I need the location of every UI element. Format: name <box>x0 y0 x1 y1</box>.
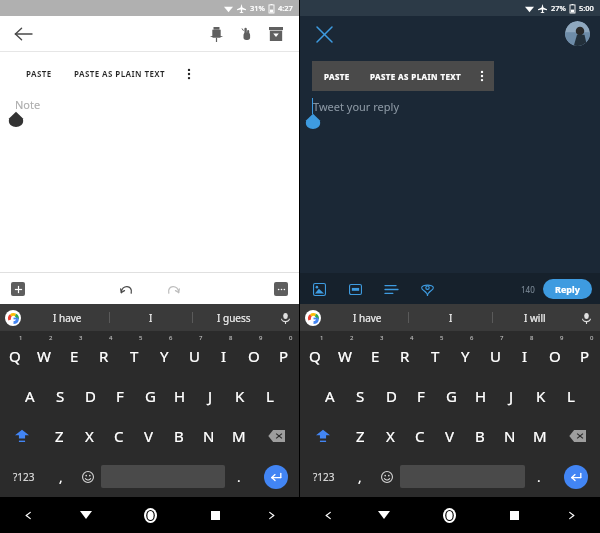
button[interactable]: , <box>347 456 373 497</box>
button[interactable]: N <box>495 416 525 456</box>
button[interactable]: Voice input <box>275 308 295 328</box>
button[interactable]: Backspace <box>555 416 600 456</box>
button[interactable]: Next <box>543 497 600 533</box>
button[interactable]: W <box>330 331 360 376</box>
button[interactable]: I guess <box>193 304 275 331</box>
button[interactable]: ?123 <box>0 456 47 497</box>
button[interactable]: B <box>164 416 194 456</box>
button[interactable]: E <box>360 331 390 376</box>
button[interactable]: Enter <box>552 456 600 497</box>
button[interactable]: I <box>409 304 492 331</box>
button[interactable]: ?123 <box>300 456 347 497</box>
button[interactable]: C <box>405 416 435 456</box>
button[interactable]: Recents <box>187 497 243 533</box>
button[interactable]: L <box>556 376 586 416</box>
button[interactable]: A <box>14 376 45 416</box>
button[interactable]: Close <box>312 22 336 46</box>
button[interactable]: Add GIF <box>344 278 366 300</box>
button[interactable]: Q <box>0 331 29 376</box>
button[interactable]: Reply <box>543 279 592 299</box>
button[interactable]: Add location <box>416 278 438 300</box>
button[interactable]: U <box>480 331 510 376</box>
button[interactable]: Undo <box>115 277 139 301</box>
button[interactable]: M <box>525 416 555 456</box>
button[interactable]: P <box>570 331 600 376</box>
button[interactable]: E <box>59 331 89 376</box>
button[interactable]: D <box>75 376 105 416</box>
button[interactable]: R <box>89 331 119 376</box>
button[interactable]: , <box>47 456 74 497</box>
button[interactable]: Add poll <box>380 278 402 300</box>
button[interactable]: V <box>435 416 465 456</box>
button[interactable]: U <box>179 331 209 376</box>
button[interactable]: PASTE AS PLAIN TEXT <box>362 61 470 91</box>
button[interactable]: Redo <box>161 277 185 301</box>
button[interactable]: H <box>466 376 496 416</box>
button[interactable]: J <box>195 376 225 416</box>
button[interactable]: S <box>45 376 75 416</box>
button[interactable]: Y <box>149 331 179 376</box>
button[interactable]: Archive <box>261 19 291 49</box>
button[interactable]: O <box>239 331 269 376</box>
button[interactable]: Shift <box>0 416 44 456</box>
button[interactable]: D <box>376 376 406 416</box>
button[interactable]: Next <box>243 497 299 533</box>
button[interactable]: X <box>375 416 405 456</box>
button[interactable]: Emoji <box>74 456 101 497</box>
button[interactable]: Add <box>6 277 30 301</box>
button[interactable]: J <box>496 376 526 416</box>
button[interactable]: PASTE AS PLAIN TEXT <box>64 57 176 90</box>
button[interactable]: X <box>74 416 104 456</box>
button[interactable]: O <box>540 331 570 376</box>
button[interactable]: R <box>390 331 420 376</box>
button[interactable]: P <box>269 331 299 376</box>
button[interactable]: More options <box>176 57 202 90</box>
button[interactable]: Add photo <box>308 278 330 300</box>
button[interactable]: Back <box>10 21 36 47</box>
button[interactable]: I have <box>26 304 109 331</box>
button[interactable]: Z <box>44 416 74 456</box>
button[interactable]: Profile <box>565 21 590 46</box>
button[interactable]: Recents <box>486 497 543 533</box>
button[interactable]: Emoji <box>373 456 400 497</box>
button[interactable]: Pin <box>201 19 231 49</box>
button[interactable]: F <box>406 376 436 416</box>
button[interactable]: More options <box>470 61 494 91</box>
button[interactable]: G <box>135 376 165 416</box>
button[interactable]: I will <box>493 304 576 331</box>
button[interactable]: T <box>119 331 149 376</box>
button[interactable]: T <box>420 331 450 376</box>
button[interactable]: Google <box>305 310 321 326</box>
button[interactable]: . <box>525 456 552 497</box>
button[interactable]: G <box>436 376 466 416</box>
button[interactable]: More <box>269 277 293 301</box>
button[interactable]: Reminder <box>231 19 261 49</box>
button[interactable]: Back <box>356 497 412 533</box>
button[interactable]: Q <box>300 331 330 376</box>
button[interactable]: Enter <box>252 456 299 497</box>
button[interactable]: S <box>345 376 376 416</box>
button[interactable]: PASTE <box>14 57 64 90</box>
button[interactable]: C <box>104 416 134 456</box>
button[interactable]: I <box>110 304 192 331</box>
button[interactable]: Previous <box>0 497 57 533</box>
button[interactable]: Home <box>114 497 187 533</box>
button[interactable]: Previous <box>300 497 356 533</box>
button[interactable]: Home <box>412 497 486 533</box>
button[interactable]: Backspace <box>254 416 299 456</box>
button[interactable]: M <box>224 416 254 456</box>
button[interactable]: K <box>225 376 255 416</box>
button[interactable]: Z <box>345 416 375 456</box>
button[interactable]: Google <box>5 310 21 326</box>
button[interactable]: F <box>105 376 135 416</box>
button[interactable]: W <box>29 331 59 376</box>
button[interactable]: Y <box>450 331 480 376</box>
button[interactable]: I have <box>326 304 408 331</box>
button[interactable]: Back <box>57 497 114 533</box>
button[interactable]: I <box>510 331 540 376</box>
button[interactable]: Shift <box>300 416 345 456</box>
button[interactable]: N <box>194 416 224 456</box>
button[interactable]: Voice input <box>576 308 596 328</box>
